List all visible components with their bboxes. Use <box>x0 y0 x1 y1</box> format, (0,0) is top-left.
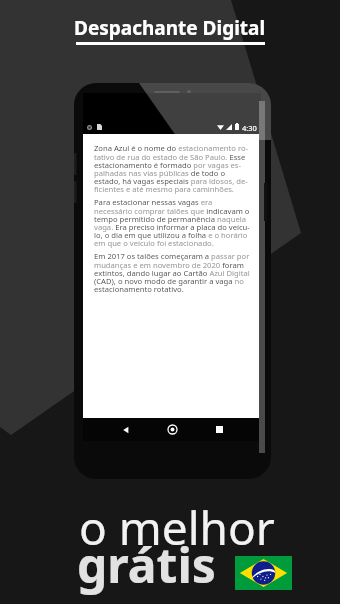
staticText: Despachante Digital <box>74 15 266 41</box>
staticText: Zona Azul é o nome do estacionamento ro-… <box>94 143 249 194</box>
staticText: Em 2017 os talões começaram a passar por… <box>94 251 250 294</box>
staticText: Para estacionar nessas vagas era necessá… <box>94 197 250 248</box>
staticText: 4:30 <box>242 123 257 133</box>
staticText: grátis <box>77 532 216 597</box>
button[interactable]: Home <box>168 425 177 434</box>
button[interactable]: Back <box>122 426 130 434</box>
staticText: o melhor <box>79 496 275 559</box>
